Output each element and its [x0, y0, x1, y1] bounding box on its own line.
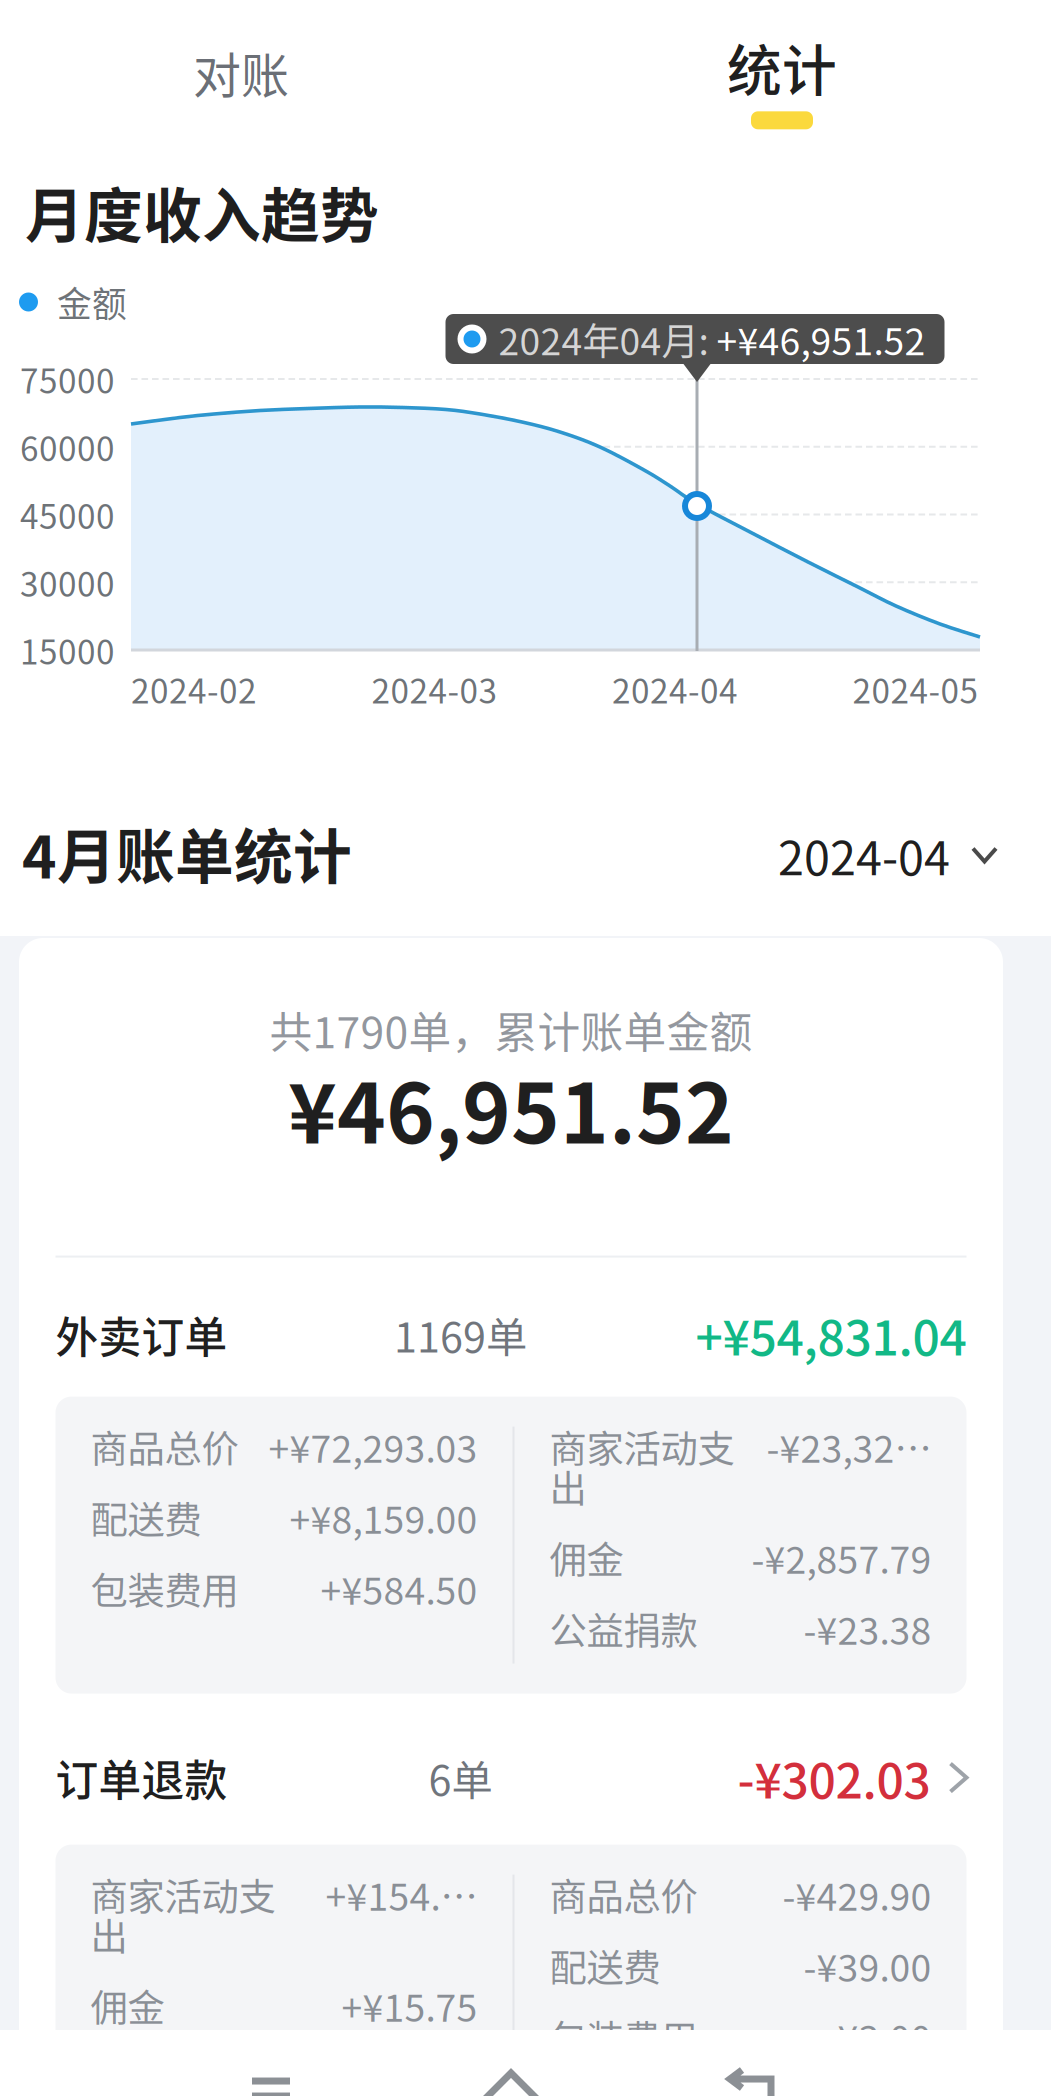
staticText: 15000: [20, 631, 115, 669]
staticText: -¥23,32…: [766, 1427, 931, 1467]
staticText: +¥15.75: [341, 1986, 477, 2026]
staticText: 商品总价: [549, 1875, 697, 1915]
staticText: 2024-04: [778, 828, 950, 882]
staticText: +¥72,293.03: [268, 1427, 477, 1467]
button[interactable]: 2024-04: [731, 815, 1051, 895]
staticText: +¥154.…: [325, 1875, 477, 1915]
staticText: -¥39.00: [803, 1946, 931, 1986]
staticText: 统计: [727, 35, 837, 98]
staticText: 对账: [193, 44, 289, 100]
staticText: 6单: [428, 1754, 492, 1801]
staticText: 2024-05: [852, 670, 978, 708]
staticText: 订单退款: [55, 1753, 227, 1802]
staticText: +¥8,159.00: [289, 1498, 477, 1538]
staticText: +¥46,951.52: [716, 317, 925, 361]
staticText: 公益捐款: [549, 1609, 697, 1649]
staticText: 45000: [20, 495, 115, 534]
staticText: 商品总价: [90, 1427, 238, 1467]
staticText: ¥46,951.52: [288, 1058, 734, 1157]
button[interactable]: Home: [436, 2041, 586, 2096]
staticText: 75000: [20, 360, 115, 398]
staticText: 金额: [57, 282, 127, 322]
staticText: 4月账单统计: [22, 810, 352, 895]
staticText: +¥54,831.04: [695, 1307, 966, 1362]
button[interactable]: 对账: [131, 12, 351, 132]
staticText: 佣金: [90, 1986, 164, 2026]
staticText: 2024-03: [371, 670, 497, 708]
staticText: 配送费: [90, 1498, 201, 1538]
staticText: 包装费用: [549, 2017, 697, 2057]
staticText: +¥584.50: [320, 1569, 477, 1609]
staticText: 30000: [20, 563, 115, 601]
staticText: 商家活动支出: [90, 1875, 275, 1955]
staticText: 2024-04: [612, 670, 738, 708]
staticText: -¥429.90: [782, 1875, 931, 1915]
staticText: 佣金: [549, 1538, 623, 1578]
staticText: 商家活动支出: [549, 1427, 734, 1507]
staticText: 月度收入趋势: [25, 169, 379, 254]
button[interactable]: 统计: [672, 35, 892, 175]
button[interactable]: Recents: [196, 2041, 346, 2096]
button[interactable]: 订单退款: [55, 1750, 966, 1806]
staticText: 包装费用: [90, 1569, 238, 1609]
staticText: -¥3.00: [824, 2017, 931, 2057]
staticText: 2024年04月:: [498, 317, 716, 361]
staticText: -¥23.38: [803, 1609, 931, 1649]
staticText: 共1790单，累计账单金额: [269, 1005, 752, 1054]
staticText: -¥2,857.79: [751, 1538, 931, 1578]
staticText: 外卖订单: [55, 1310, 227, 1359]
staticText: -¥302.03: [737, 1750, 930, 1805]
staticText: 2024-02: [131, 670, 257, 708]
staticText: 1169单: [394, 1311, 527, 1358]
staticText: 配送费: [549, 1946, 660, 1986]
staticText: 60000: [20, 427, 115, 466]
button[interactable]: Back: [676, 2041, 826, 2096]
